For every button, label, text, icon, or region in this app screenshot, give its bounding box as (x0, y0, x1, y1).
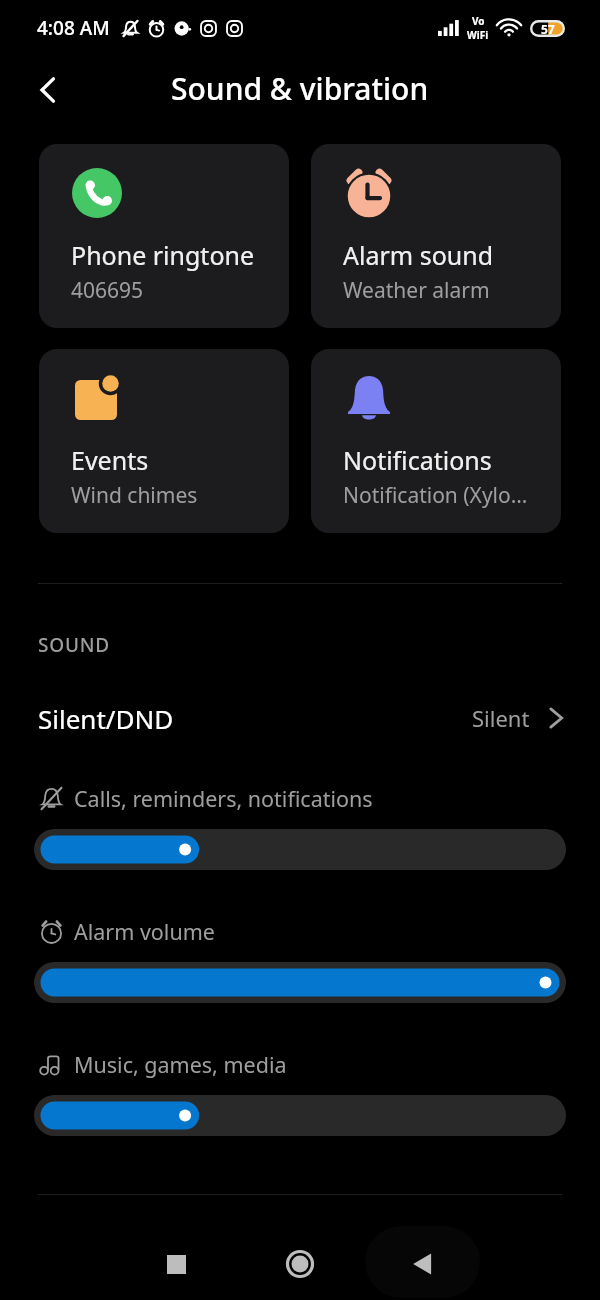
button[interactable]: Alarm sound (311, 144, 561, 328)
staticText: Weather alarm (343, 276, 490, 305)
staticText: Sound & vibration (171, 68, 429, 109)
button[interactable]: Back (391, 1233, 453, 1295)
staticText: 406695 (71, 276, 144, 305)
button[interactable]: Recent apps (145, 1233, 207, 1295)
staticText: Wind chimes (71, 481, 198, 510)
button[interactable]: Events (39, 349, 289, 533)
staticText: Music, games, media (74, 1050, 287, 1079)
staticText: Vo (472, 14, 485, 28)
staticText: Silent/DND (38, 701, 174, 736)
staticText: 57 (541, 21, 555, 37)
button[interactable]: Phone ringtone (39, 144, 289, 328)
staticText: Alarm sound (343, 238, 494, 272)
button[interactable]: Back (24, 66, 72, 114)
staticText: WiFi (467, 28, 489, 42)
staticText: Notifications (343, 443, 492, 477)
staticText: Events (71, 443, 149, 477)
button[interactable]: Notifications (311, 349, 561, 533)
staticText: Calls, reminders, notifications (74, 784, 373, 813)
staticText: SOUND (38, 632, 111, 658)
staticText: 4:08 AM (37, 15, 110, 41)
staticText: Silent (472, 703, 530, 733)
staticText: Notification (Xylo… (343, 481, 528, 510)
button[interactable] (34, 962, 566, 1003)
button[interactable]: Silent/DND (0, 690, 600, 746)
button[interactable] (34, 829, 566, 870)
button[interactable] (34, 1095, 566, 1136)
staticText: Alarm volume (74, 917, 215, 946)
button[interactable]: Home (269, 1233, 331, 1295)
staticText: Phone ringtone (71, 238, 255, 272)
